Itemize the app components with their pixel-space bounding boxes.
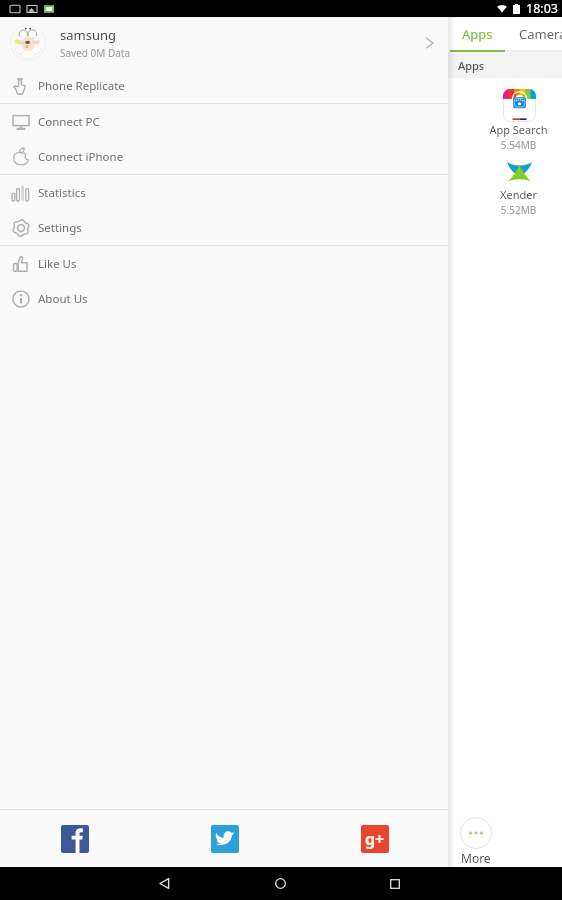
button[interactable]: Twitter (211, 825, 239, 853)
staticText: Camera (519, 25, 562, 43)
staticText: samsung (60, 26, 116, 44)
button[interactable]: About Us (0, 281, 448, 316)
staticText: Phone Replicate (38, 78, 125, 94)
button[interactable]: Phone Replicate (0, 68, 448, 103)
staticText: 18:03 (526, 0, 558, 17)
staticText: Apps (458, 58, 485, 73)
staticText: 5.54MB (477, 138, 560, 152)
staticText: About Us (38, 291, 88, 307)
staticText: Settings (38, 220, 82, 236)
staticText: 5.52MB (477, 203, 560, 217)
button[interactable]: Apps (450, 17, 505, 50)
button[interactable]: Xender (477, 154, 562, 217)
staticText: Xender (477, 187, 560, 202)
staticText: Apps (462, 25, 493, 43)
button[interactable]: Statistics (0, 175, 448, 210)
staticText: More (461, 850, 491, 866)
button[interactable]: Camera (505, 17, 562, 50)
button[interactable]: Connect iPhone (0, 139, 448, 174)
button[interactable]: Like Us (0, 246, 448, 281)
button[interactable]: Recent apps (375, 867, 415, 900)
staticText: App Search (477, 122, 560, 137)
button[interactable]: App Search (477, 89, 562, 152)
button[interactable]: Back (144, 867, 184, 900)
button[interactable]: More (460, 817, 492, 866)
staticText: Connect iPhone (38, 149, 124, 165)
button[interactable]: samsung (0, 17, 448, 68)
staticText: g+ (365, 828, 385, 850)
button[interactable]: Facebook (61, 825, 89, 853)
staticText: Statistics (38, 185, 86, 201)
button[interactable]: Connect PC (0, 104, 448, 139)
staticText: Connect PC (38, 114, 100, 130)
button[interactable]: Settings (0, 210, 448, 245)
staticText: Like Us (38, 256, 77, 272)
staticText: Saved 0M Data (60, 46, 131, 60)
button[interactable]: Home (260, 867, 300, 900)
button[interactable]: Google Plus (361, 825, 389, 853)
